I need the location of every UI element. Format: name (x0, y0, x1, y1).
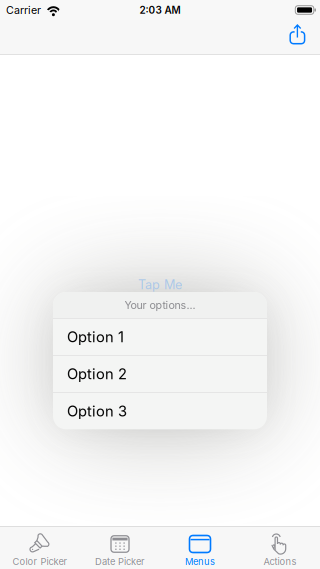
staticText: Color Picker (12, 556, 67, 567)
staticText: Your options... (124, 298, 195, 311)
staticText: Carrier (6, 3, 41, 16)
staticText: Tap Me (138, 277, 182, 292)
staticText: Option 1 (67, 328, 124, 346)
button[interactable]: Actions (240, 527, 320, 569)
button[interactable]: Menus (160, 527, 240, 569)
button[interactable]: Option 1 (53, 319, 267, 355)
button[interactable]: Option 2 (53, 356, 267, 392)
button[interactable]: Share (282, 20, 313, 53)
button[interactable]: Color Picker (0, 527, 80, 569)
staticText: Menus (185, 556, 215, 567)
staticText: Actions (263, 556, 296, 567)
staticText: 2:03 AM (139, 4, 180, 16)
staticText: Date Picker (95, 556, 145, 567)
button[interactable]: Date Picker (80, 527, 160, 569)
button[interactable]: Option 3 (53, 393, 267, 429)
staticText: Option 3 (67, 402, 127, 420)
staticText: Option 2 (67, 365, 127, 383)
